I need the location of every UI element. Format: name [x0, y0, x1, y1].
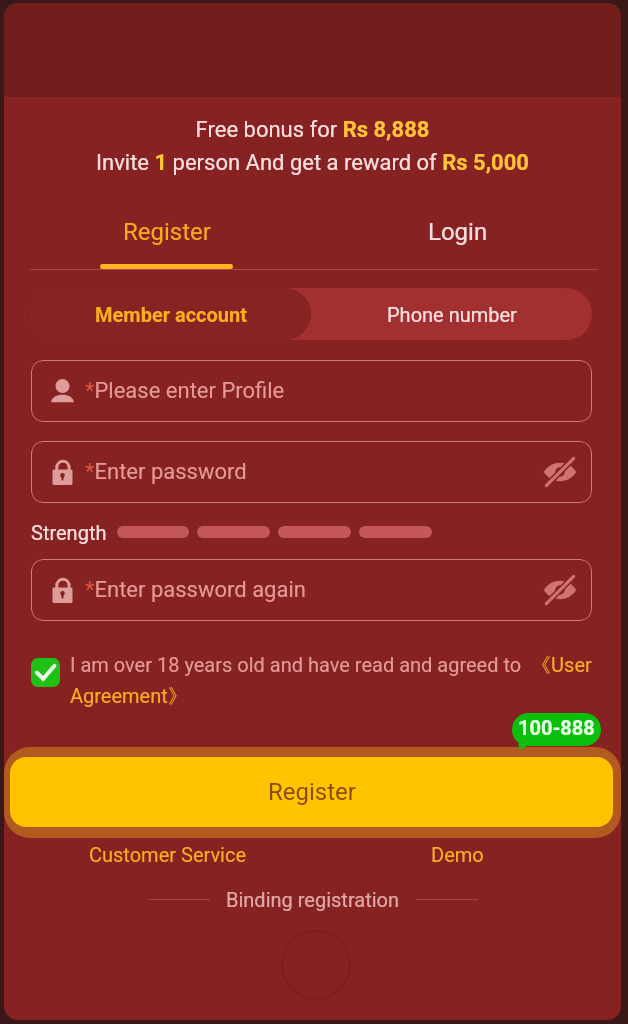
staticText: Customer Service [89, 843, 247, 866]
button[interactable]: *Enter password again [31, 559, 592, 621]
button[interactable]: Member account [31, 288, 311, 340]
staticText: Binding registration [226, 888, 400, 911]
staticText: Demo [431, 843, 484, 866]
button[interactable]: Agree to User Agreement [31, 658, 60, 687]
staticText: *Enter password again [85, 577, 306, 603]
button[interactable]: Register [10, 757, 613, 827]
button[interactable]: Phone number [311, 288, 592, 340]
staticText: Login [428, 218, 488, 246]
staticText: Register [123, 218, 211, 246]
staticText: I am over 18 years old and have read and… [70, 653, 596, 709]
staticText: Invite 1 person And get a reward of Rs 5… [4, 150, 621, 176]
staticText: Free bonus for Rs 8,888 [4, 117, 621, 143]
button[interactable]: Show password [542, 454, 578, 490]
staticText: Phone number [387, 303, 517, 326]
staticText: 100-888 [518, 716, 595, 739]
staticText: *Please enter Profile [85, 378, 285, 404]
button[interactable]: Customer Service [79, 839, 256, 869]
button[interactable]: *Enter password [31, 441, 592, 503]
staticText: Member account [95, 303, 247, 326]
button[interactable]: Demo [395, 839, 519, 869]
button[interactable]: Login [382, 218, 533, 273]
button[interactable]: Register [91, 218, 242, 273]
staticText: *Enter password [85, 459, 247, 485]
staticText: Register [268, 778, 356, 806]
button[interactable]: *Please enter Profile [31, 360, 592, 422]
button[interactable]: Promotion code 100-888 [512, 713, 601, 750]
button[interactable]: Show password [542, 572, 578, 608]
staticText: Strength [31, 521, 107, 544]
